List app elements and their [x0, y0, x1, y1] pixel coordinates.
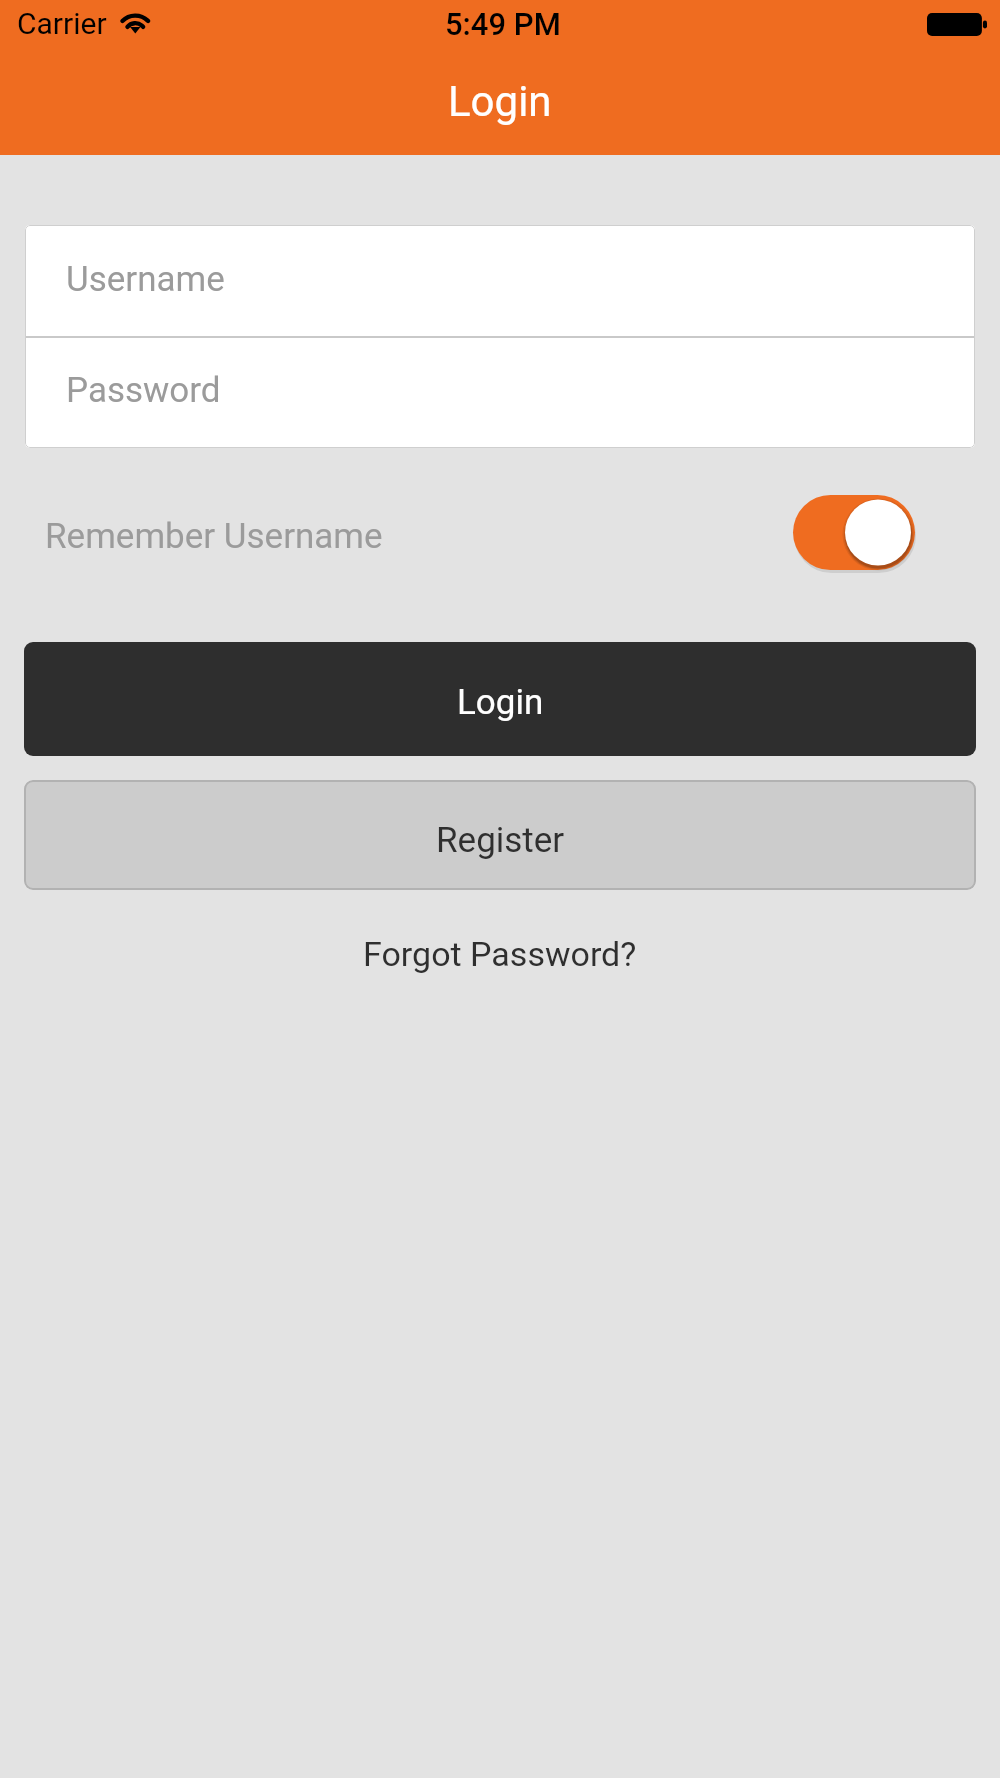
- button[interactable]: Forgot Password?: [339, 922, 661, 986]
- staticText: Register: [436, 820, 565, 861]
- staticText: 5:49 PM: [445, 6, 561, 42]
- staticText: Remember Username: [45, 516, 383, 557]
- button[interactable]: Username: [25, 225, 975, 336]
- staticText: Username: [66, 259, 225, 300]
- staticText: Login: [457, 682, 544, 723]
- button[interactable]: Register: [24, 780, 976, 890]
- button[interactable]: Remember Username toggle: [793, 495, 915, 570]
- staticText: Carrier: [17, 6, 107, 41]
- staticText: Forgot Password?: [363, 934, 637, 974]
- staticText: Login: [448, 77, 552, 126]
- button[interactable]: Password: [25, 338, 975, 448]
- staticText: Password: [66, 370, 221, 411]
- button[interactable]: Login: [24, 642, 976, 756]
